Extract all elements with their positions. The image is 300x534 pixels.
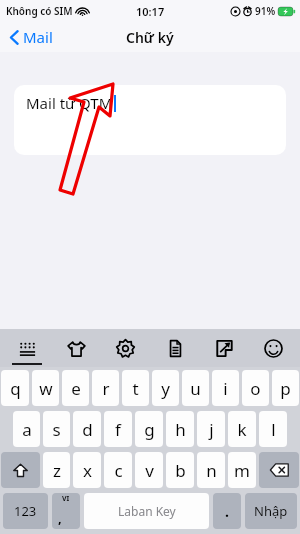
button[interactable]: f (104, 411, 132, 447)
button[interactable]: w (32, 370, 59, 406)
staticText: Chữ ký (126, 28, 174, 47)
staticText: . (225, 502, 229, 521)
button[interactable]: y (152, 370, 179, 406)
button[interactable]: t (122, 370, 149, 406)
staticText: m (234, 459, 250, 482)
button[interactable]: o (242, 370, 269, 406)
staticText: , (58, 509, 62, 527)
button[interactable]: Emoji (251, 329, 295, 367)
staticText: Mail từ QTM (26, 93, 113, 113)
button[interactable]: Laban Key (84, 493, 209, 529)
button[interactable]: h (166, 411, 194, 447)
staticText: Laban Key (118, 503, 176, 519)
staticText: w (39, 377, 53, 400)
staticText: q (10, 377, 21, 400)
button[interactable]: j (197, 411, 225, 447)
staticText: p (280, 377, 291, 400)
button[interactable]: n (197, 452, 225, 488)
staticText: f (115, 418, 121, 441)
button[interactable]: r (92, 370, 119, 406)
button[interactable]: s (43, 411, 70, 447)
button[interactable]: q (1, 370, 29, 406)
button[interactable]: x (73, 452, 101, 488)
button[interactable]: l (259, 411, 287, 447)
staticText: i (223, 377, 228, 400)
staticText: x (83, 459, 92, 482)
staticText: v (145, 459, 154, 482)
staticText: o (250, 377, 261, 400)
button[interactable]: i (212, 370, 239, 406)
staticText: z (53, 459, 61, 482)
staticText: c (114, 459, 123, 482)
button[interactable]: Nhập (245, 493, 297, 529)
staticText: t (132, 377, 139, 400)
button[interactable]: v (135, 452, 163, 488)
staticText: 10:17 (136, 4, 165, 19)
staticText: s (52, 418, 61, 441)
button[interactable]: Documents (153, 329, 197, 367)
staticText: a (22, 418, 32, 441)
button[interactable]: Settings (103, 329, 147, 367)
button[interactable]: . (213, 493, 241, 529)
staticText: g (144, 418, 155, 441)
staticText: Không có SIM (6, 4, 73, 18)
button[interactable]: k (228, 411, 256, 447)
button[interactable]: c (104, 452, 132, 488)
button[interactable]: u (182, 370, 209, 406)
staticText: y (161, 377, 170, 400)
button[interactable]: Keyboard (5, 329, 49, 367)
button[interactable]: p (272, 370, 299, 406)
button[interactable]: e (62, 370, 89, 406)
staticText: r (102, 377, 110, 400)
button[interactable]: g (135, 411, 163, 447)
staticText: e (71, 377, 81, 400)
staticText: d (82, 418, 93, 441)
button[interactable]: b (166, 452, 194, 488)
button[interactable]: Backspace (259, 452, 299, 488)
staticText: 123 (14, 502, 37, 520)
staticText: j (209, 418, 214, 441)
button[interactable]: z (43, 452, 70, 488)
button[interactable]: Mail (6, 24, 57, 50)
staticText: VI (62, 494, 70, 504)
staticText: b (175, 459, 186, 482)
button[interactable]: d (73, 411, 101, 447)
staticText: l (271, 418, 276, 441)
button[interactable]: Mail từ QTM (14, 85, 286, 155)
button[interactable]: 123 (3, 493, 48, 529)
button[interactable]: a (13, 411, 40, 447)
button[interactable]: GIF (202, 329, 246, 367)
button[interactable]: VI (52, 493, 80, 529)
button[interactable]: m (228, 452, 256, 488)
staticText: k (237, 418, 247, 441)
button[interactable]: Stickers (54, 329, 98, 367)
staticText: Nhập (254, 502, 288, 520)
button[interactable]: Shift (1, 452, 40, 488)
staticText: u (190, 377, 201, 400)
staticText: h (175, 418, 186, 441)
staticText: Mail (23, 27, 53, 47)
staticText: 91% (255, 4, 276, 18)
staticText: n (206, 459, 217, 482)
